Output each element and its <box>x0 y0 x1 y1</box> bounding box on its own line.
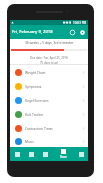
button[interactable]: Kegel Exercises <box>10 93 88 107</box>
staticText: Fri, February 9, 2018 <box>12 29 53 35</box>
staticText: Symptoms <box>25 84 42 88</box>
staticText: Kegel Exercises <box>25 98 49 102</box>
button[interactable]: Tools <box>38 147 52 161</box>
button[interactable]: Chat <box>74 147 88 161</box>
button[interactable]: Contraction Timer <box>10 121 88 135</box>
staticText: Due date: Tue, April 25, 2018 <box>30 56 68 60</box>
staticText: News <box>60 155 67 159</box>
staticText: Music <box>25 139 35 143</box>
staticText: Kick Tracker <box>25 112 44 116</box>
button[interactable]: Today <box>10 147 24 161</box>
button[interactable]: Weight Chart <box>10 65 88 79</box>
staticText: 10:03 PM <box>73 21 87 25</box>
staticText: 75 days to go! <box>40 61 59 64</box>
staticText: 36 weeks + 5 days, 3rd trimester <box>25 41 74 45</box>
button[interactable]: Music <box>10 135 88 147</box>
button[interactable]: Kick Tracker <box>10 107 88 121</box>
button[interactable]: Health <box>67 25 77 39</box>
staticText: Weight Chart <box>25 70 46 74</box>
button[interactable]: Symptoms <box>10 79 88 93</box>
staticText: Contraction Timer <box>25 126 53 130</box>
button[interactable]: Settings <box>77 25 87 39</box>
button[interactable]: Calendar <box>24 147 38 161</box>
button[interactable]: News <box>52 147 74 161</box>
